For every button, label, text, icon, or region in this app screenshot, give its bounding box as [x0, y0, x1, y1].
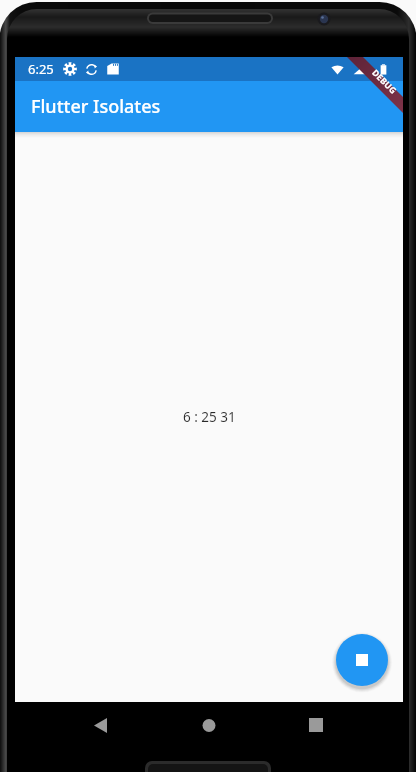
staticText: Flutter Isolates: [31, 94, 161, 119]
staticText: 6 : 25 31: [183, 408, 236, 426]
staticText: DEBUG: [369, 67, 400, 97]
staticText: 6:25: [28, 60, 54, 78]
button[interactable]: Stop: [336, 634, 388, 686]
